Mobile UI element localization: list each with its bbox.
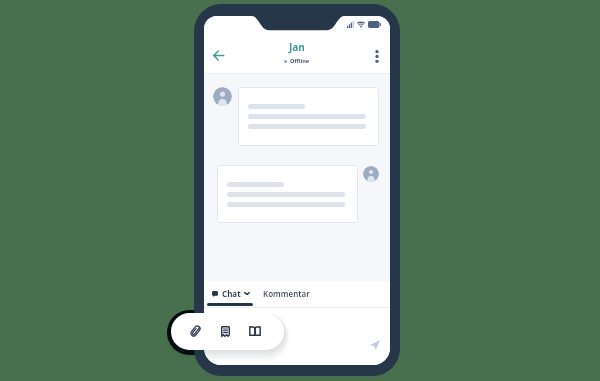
button[interactable]: Send message — [366, 336, 384, 354]
button[interactable]: Chat — [209, 285, 253, 302]
button[interactable]: Kommentar — [260, 285, 313, 302]
staticText: Chat — [222, 288, 241, 299]
button[interactable]: Back — [206, 43, 230, 67]
staticText: Offline — [290, 57, 310, 65]
button[interactable] — [217, 165, 358, 223]
button[interactable] — [238, 87, 379, 146]
button[interactable]: Attach file — [181, 317, 209, 345]
button[interactable]: Knowledge base — [241, 317, 269, 345]
staticText: Kommentar — [263, 288, 310, 299]
staticText: Jan — [289, 40, 305, 54]
button[interactable]: More options — [371, 45, 383, 67]
button[interactable]: Documents — [211, 317, 239, 345]
